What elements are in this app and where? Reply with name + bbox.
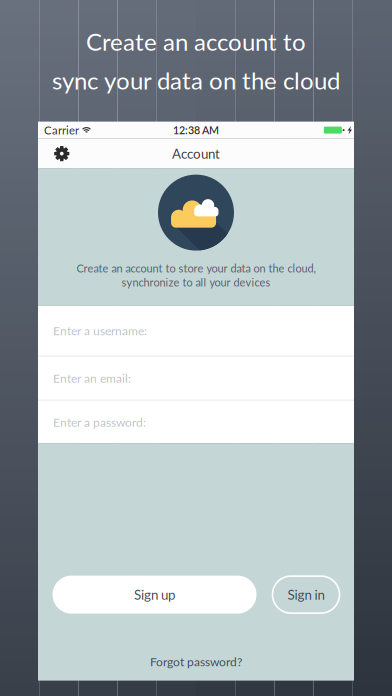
staticText: Sign up — [134, 587, 175, 603]
staticText: Carrier — [44, 123, 79, 137]
staticText: Enter a password: — [53, 415, 146, 429]
staticText: sync your data on the cloud — [52, 66, 340, 95]
button[interactable]: Sign in — [272, 576, 339, 613]
staticText: Forgot password? — [150, 654, 242, 669]
staticText: Sign in — [287, 587, 324, 603]
staticText: 12:38 AM — [173, 124, 219, 136]
staticText: Enter a username: — [53, 323, 147, 338]
button[interactable]: Sign up — [52, 576, 256, 614]
staticText: synchronize to all your devices — [121, 276, 270, 289]
staticText: Create an account to store your data on … — [76, 262, 315, 275]
staticText: Create an account to — [86, 27, 306, 56]
staticText: Enter an email: — [53, 371, 131, 385]
staticText: Account — [172, 146, 220, 162]
button[interactable]: Settings — [38, 139, 108, 169]
button[interactable]: Forgot password? — [38, 651, 354, 673]
